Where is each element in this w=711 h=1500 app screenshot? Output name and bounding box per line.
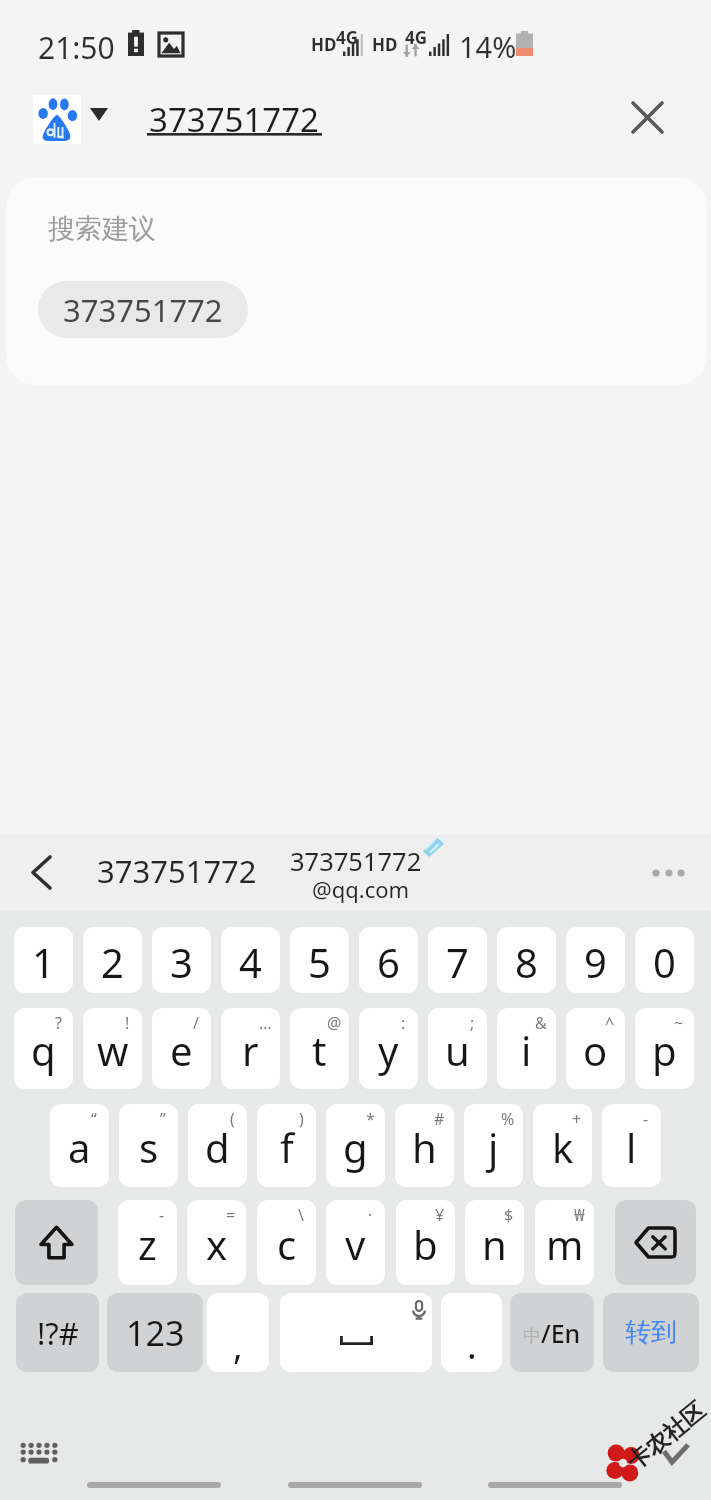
staticText: 搜索建议 — [48, 212, 156, 246]
staticText: a — [68, 1120, 91, 1174]
staticText: 5 — [308, 935, 331, 989]
staticText: 1 — [32, 935, 55, 989]
staticText: h — [412, 1120, 437, 1174]
button[interactable]: 6 — [359, 927, 418, 993]
staticText: ^ — [605, 1012, 615, 1032]
button[interactable]: Shift — [15, 1200, 98, 1285]
button[interactable]: 1 — [14, 927, 73, 993]
button[interactable]: @ — [290, 1008, 349, 1089]
staticText: ) — [299, 1108, 304, 1128]
button[interactable]: !?# — [16, 1293, 99, 1372]
button[interactable]: - — [118, 1200, 177, 1285]
staticText: 21:50 — [38, 27, 115, 68]
staticText: * — [366, 1108, 375, 1128]
staticText: \ — [298, 1204, 304, 1224]
button[interactable]: & — [497, 1008, 556, 1089]
button[interactable]: 123 — [107, 1293, 203, 1372]
staticText: 0 — [653, 935, 676, 989]
staticText: !?# — [37, 1312, 79, 1354]
staticText: … — [259, 1012, 272, 1032]
button[interactable]: Change engine — [79, 94, 119, 134]
button[interactable]: * — [326, 1104, 385, 1187]
staticText: ! — [125, 1012, 130, 1032]
staticText: 123 — [126, 1310, 185, 1356]
button[interactable]: 5 — [290, 927, 349, 993]
staticText: z — [138, 1217, 157, 1271]
button[interactable]: … — [221, 1008, 280, 1089]
staticText: “ — [91, 1108, 97, 1128]
button[interactable]: 3 — [152, 927, 211, 993]
button[interactable]: 8 — [497, 927, 556, 993]
button[interactable]: 373751772 — [38, 281, 248, 338]
staticText: d — [205, 1120, 230, 1174]
staticText: 9 — [584, 935, 607, 989]
staticText: p — [652, 1023, 677, 1077]
staticText: ( — [230, 1108, 235, 1128]
staticText: s — [139, 1120, 159, 1174]
staticText: 7 — [446, 935, 469, 989]
button[interactable]: 0 — [635, 927, 694, 993]
staticText: 14% — [459, 27, 517, 66]
button[interactable]: ^ — [566, 1008, 625, 1089]
staticText: 转到 — [625, 1316, 677, 1349]
button[interactable]: 7 — [428, 927, 487, 993]
button[interactable] — [87, 1482, 221, 1488]
button[interactable]: 373751772 — [86, 838, 268, 904]
button[interactable] — [488, 1482, 622, 1488]
button[interactable]: Search engine — [33, 95, 81, 144]
staticText: j — [488, 1120, 499, 1174]
staticText: y — [378, 1023, 399, 1077]
button[interactable]: # — [395, 1104, 454, 1187]
button[interactable]: Space — [280, 1293, 432, 1372]
button[interactable]: ! — [83, 1008, 142, 1089]
button[interactable]: ) — [257, 1104, 316, 1187]
staticText: k — [552, 1120, 574, 1174]
staticText: t — [312, 1023, 327, 1077]
staticText: ₩ — [574, 1204, 585, 1224]
button[interactable]: More — [638, 852, 698, 894]
staticText: - — [643, 1108, 649, 1128]
staticText: @ — [327, 1012, 342, 1032]
button[interactable]: 中 — [510, 1293, 594, 1372]
button[interactable]: 9 — [566, 927, 625, 993]
button[interactable]: . — [441, 1293, 502, 1372]
button[interactable]: Backspace — [615, 1200, 696, 1285]
button[interactable]: ; — [428, 1008, 487, 1089]
button[interactable]: ¥ — [396, 1200, 455, 1285]
button[interactable]: 373751772 — [282, 836, 450, 906]
button[interactable]: % — [464, 1104, 523, 1187]
button[interactable]: - — [602, 1104, 661, 1187]
button[interactable]: Clear — [615, 85, 679, 149]
button[interactable]: “ — [50, 1104, 109, 1187]
button[interactable]: + — [533, 1104, 592, 1187]
button[interactable]: \ — [257, 1200, 316, 1285]
staticText: ” — [160, 1108, 166, 1128]
staticText: c — [277, 1217, 297, 1271]
staticText: o — [583, 1023, 608, 1077]
button[interactable] — [288, 1482, 422, 1488]
staticText: i — [521, 1023, 532, 1077]
button[interactable]: ~ — [635, 1008, 694, 1089]
button[interactable]: , — [207, 1293, 269, 1372]
button[interactable]: · — [326, 1200, 385, 1285]
staticText: 6 — [377, 935, 400, 989]
button[interactable]: : — [359, 1008, 418, 1089]
button[interactable]: 4 — [221, 927, 280, 993]
button[interactable]: 2 — [83, 927, 142, 993]
button[interactable]: / — [152, 1008, 211, 1089]
button[interactable]: 转到 — [603, 1293, 699, 1372]
staticText: f — [280, 1120, 294, 1174]
button[interactable]: Keyboard switch — [14, 1434, 64, 1470]
staticText: 4G — [336, 26, 359, 49]
button[interactable]: ? — [14, 1008, 73, 1089]
button[interactable]: Back — [10, 841, 72, 903]
staticText: 4G — [405, 26, 428, 49]
button[interactable]: $ — [465, 1200, 524, 1285]
button[interactable]: ( — [188, 1104, 247, 1187]
button[interactable]: ” — [119, 1104, 178, 1187]
button[interactable]: ₩ — [535, 1200, 594, 1285]
staticText: 373751772 — [97, 850, 257, 892]
button[interactable]: = — [187, 1200, 246, 1285]
staticText: m — [546, 1217, 584, 1271]
staticText: /En — [541, 1316, 581, 1350]
